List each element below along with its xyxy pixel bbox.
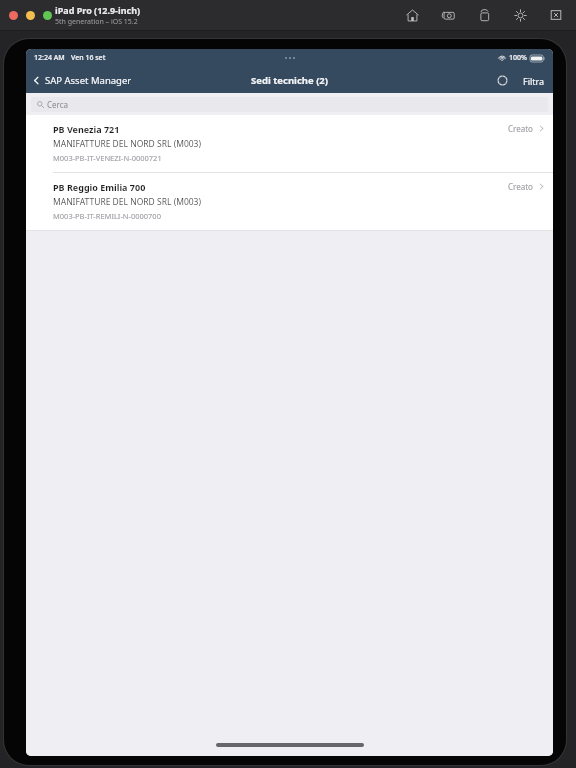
button[interactable]: Cerca bbox=[31, 97, 548, 112]
staticText: M003-PB-IT-VENEZI-N-0000721 bbox=[53, 153, 162, 163]
button[interactable] bbox=[9, 11, 18, 20]
staticText: Ven 16 set bbox=[71, 53, 106, 63]
staticText: MANIFATTURE DEL NORD SRL (M003) bbox=[53, 196, 202, 208]
button[interactable]: PB Venezia 721 bbox=[26, 115, 553, 172]
button[interactable]: More bbox=[548, 7, 564, 23]
button[interactable]: Aggiorna bbox=[496, 74, 509, 87]
staticText: PB Reggio Emilia 700 bbox=[53, 181, 146, 193]
staticText: Creato bbox=[508, 123, 533, 134]
staticText: M003-PB-IT-REMILI-N-0000700 bbox=[53, 211, 161, 221]
staticText: Cerca bbox=[47, 99, 69, 110]
button[interactable]: Rotate bbox=[476, 7, 492, 23]
staticText: MANIFATTURE DEL NORD SRL (M003) bbox=[53, 138, 202, 150]
staticText: PB Venezia 721 bbox=[53, 123, 120, 135]
button[interactable]: Screenshot bbox=[440, 7, 456, 23]
staticText: 100% bbox=[509, 53, 527, 63]
button[interactable]: Appearance bbox=[512, 7, 528, 23]
staticText: Creato bbox=[508, 181, 533, 192]
staticText: Filtra bbox=[523, 75, 545, 87]
button[interactable]: Home bbox=[404, 7, 420, 23]
button[interactable]: SAP Asset Manager bbox=[32, 74, 132, 87]
staticText: Sedi tecniche (2) bbox=[251, 74, 329, 87]
staticText: SAP Asset Manager bbox=[45, 74, 132, 87]
button[interactable]: PB Reggio Emilia 700 bbox=[26, 173, 553, 230]
staticText: iPad Pro (12.9-inch) bbox=[55, 4, 141, 16]
button[interactable] bbox=[43, 11, 52, 20]
staticText: 12:24 AM bbox=[34, 53, 65, 63]
button[interactable]: Filtra bbox=[523, 75, 545, 87]
button[interactable] bbox=[26, 11, 35, 20]
staticText: 5th generation – iOS 15.2 bbox=[55, 17, 138, 27]
